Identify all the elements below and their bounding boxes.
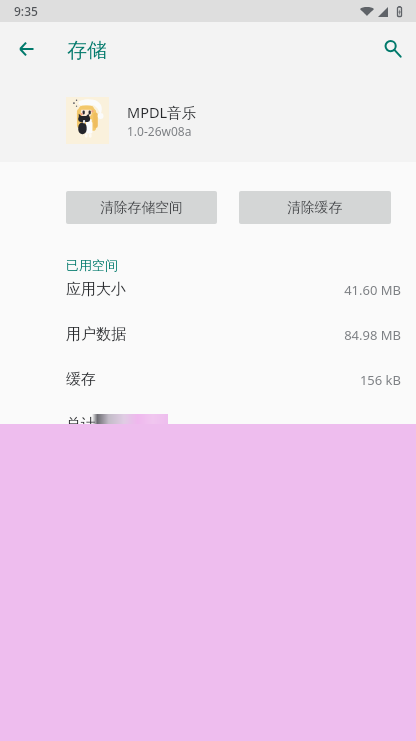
- staticText: 用户数据: [66, 325, 126, 344]
- staticText: 41.60 MB: [344, 281, 401, 299]
- staticText: 1.0-26w08a: [127, 123, 192, 139]
- staticText: 存储: [67, 38, 107, 63]
- staticText: 84.98 MB: [344, 326, 401, 344]
- staticText: 9:35: [14, 3, 38, 19]
- button[interactable]: 清除存储空间: [66, 191, 217, 224]
- staticText: 清除存储空间: [100, 199, 183, 216]
- staticText: 缓存: [66, 370, 96, 389]
- staticText: 总计: [66, 415, 96, 434]
- staticText: 已用空间: [66, 257, 118, 273]
- staticText: 156 kB: [359, 371, 401, 389]
- button[interactable]: 清除缓存: [239, 191, 391, 224]
- button[interactable]: 总计: [0, 402, 416, 447]
- button[interactable]: Search: [375, 31, 410, 66]
- staticText: MPDL音乐: [127, 102, 197, 122]
- staticText: 清除缓存: [287, 199, 343, 216]
- button[interactable]: Back: [9, 31, 44, 66]
- staticText: 应用大小: [66, 280, 126, 299]
- button[interactable]: 缓存: [0, 357, 416, 402]
- button[interactable]: 用户数据: [0, 312, 416, 357]
- button[interactable]: 应用大小: [0, 267, 416, 312]
